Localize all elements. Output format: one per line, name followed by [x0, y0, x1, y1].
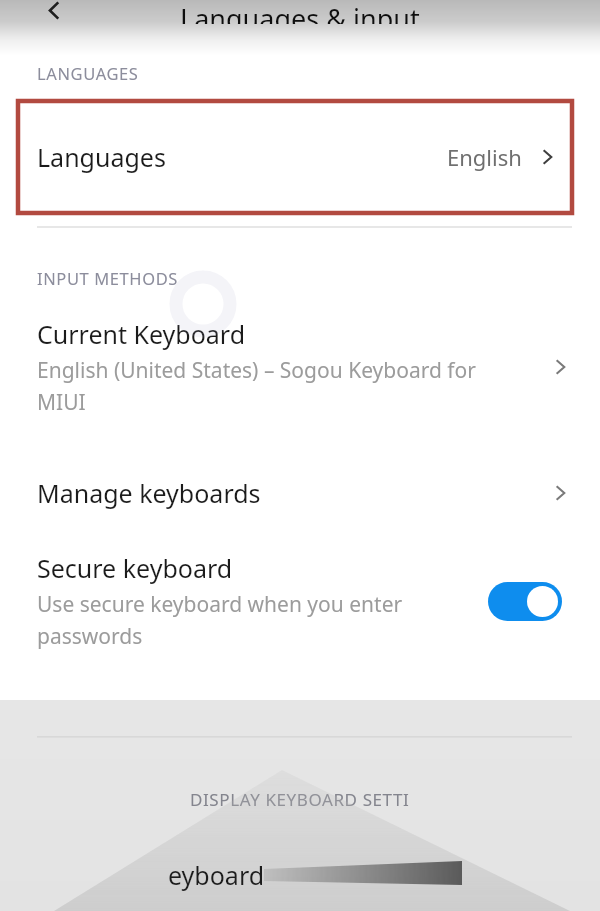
- staticText: passwords: [37, 622, 143, 651]
- button[interactable]: Secure keyboard toggle: [488, 582, 562, 621]
- button[interactable]: Current Keyboard: [0, 317, 600, 417]
- staticText: Current Keyboard: [37, 317, 246, 351]
- staticText: Use secure keyboard when you enter: [37, 590, 403, 619]
- button[interactable]: Secure keyboard: [0, 551, 600, 651]
- staticText: MIUI: [37, 388, 86, 417]
- button[interactable]: Languages: [18, 101, 572, 213]
- button[interactable]: Back: [32, 0, 76, 32]
- staticText: English (United States) – Sogou Keyboard…: [37, 356, 476, 385]
- button[interactable]: Manage keyboards: [0, 465, 600, 521]
- staticText: Secure keyboard: [37, 551, 233, 585]
- staticText: English: [447, 142, 522, 172]
- staticText: LANGUAGES: [37, 62, 139, 84]
- staticText: eyboard: [168, 858, 265, 892]
- staticText: Languages: [37, 140, 447, 174]
- staticText: INPUT METHODS: [37, 267, 178, 289]
- staticText: Manage keyboards: [37, 476, 548, 510]
- staticText: DISPLAY KEYBOARD SETTI: [190, 788, 410, 811]
- staticText: Languages & input: [180, 0, 420, 24]
